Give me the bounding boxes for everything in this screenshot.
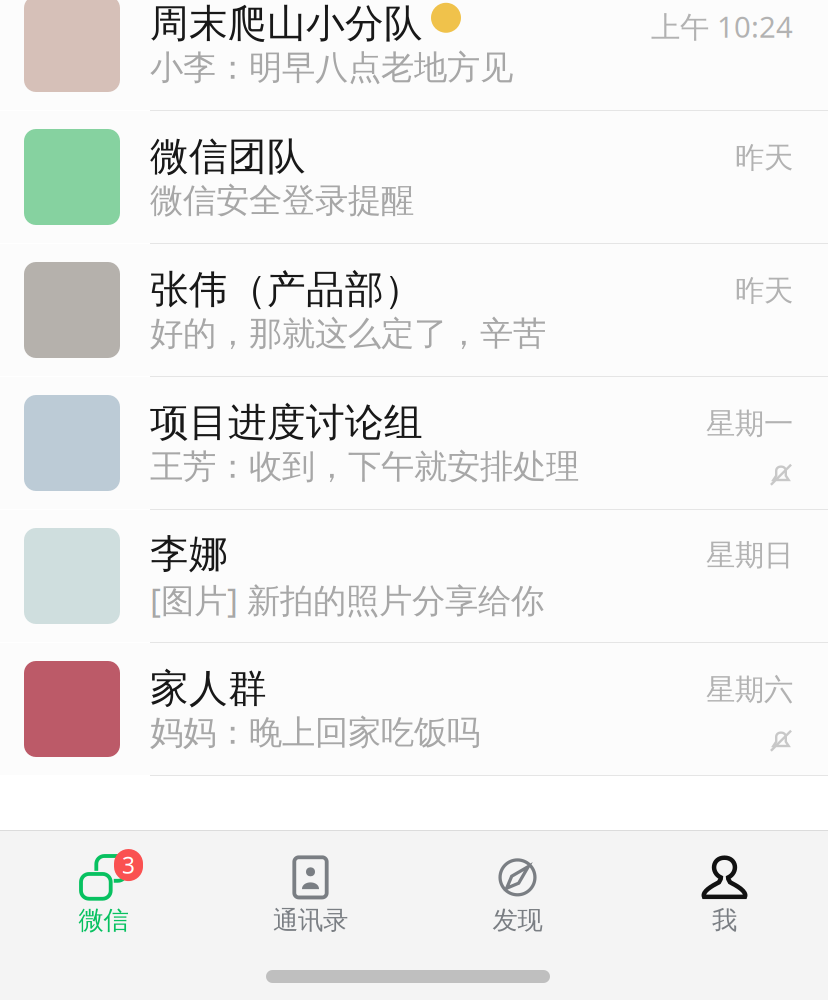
staticText: 星期六 [706, 672, 793, 708]
button[interactable]: 3 [0, 831, 207, 946]
staticText: 发现 [492, 905, 542, 936]
staticText: 昨天 [735, 140, 793, 176]
staticText: 项目进度讨论组 [150, 399, 423, 446]
button[interactable]: 周末爬山小分队 [0, 0, 828, 110]
staticText: 上午 10:24 [651, 7, 793, 46]
staticText: [图片] 新拍的照片分享给你 [150, 578, 544, 622]
staticText: 李娜 [150, 530, 228, 578]
staticText: 微信 [78, 905, 128, 936]
staticText: 3 [122, 850, 135, 880]
staticText: 周末爬山小分队 [150, 0, 423, 47]
button[interactable]: 我 [621, 831, 828, 946]
staticText: 妈妈：晚上回家吃饭吗 [150, 712, 480, 753]
staticText: 我 [712, 905, 737, 936]
staticText: 小李：明早八点老地方见 [150, 47, 513, 88]
staticText: 微信安全登录提醒 [150, 180, 414, 221]
button[interactable]: 发现 [414, 831, 621, 946]
staticText: 家人群 [150, 665, 267, 712]
button[interactable]: 通讯录 [207, 831, 414, 946]
button[interactable]: 李娜 [0, 510, 828, 642]
staticText: 好的，那就这么定了，辛苦 [150, 313, 546, 354]
button[interactable]: 家人群 [0, 643, 828, 775]
button[interactable]: 张伟（产品部） [0, 244, 828, 376]
staticText: 昨天 [735, 273, 793, 309]
staticText: 微信团队 [150, 133, 306, 180]
staticText: 星期日 [706, 537, 793, 573]
staticText: 通讯录 [273, 905, 348, 936]
staticText: 王芳：收到，下午就安排处理 [150, 446, 579, 487]
button[interactable]: 项目进度讨论组 [0, 377, 828, 509]
staticText: 张伟（产品部） [150, 266, 423, 313]
staticText: 星期一 [706, 406, 793, 442]
button[interactable]: 微信团队 [0, 111, 828, 243]
